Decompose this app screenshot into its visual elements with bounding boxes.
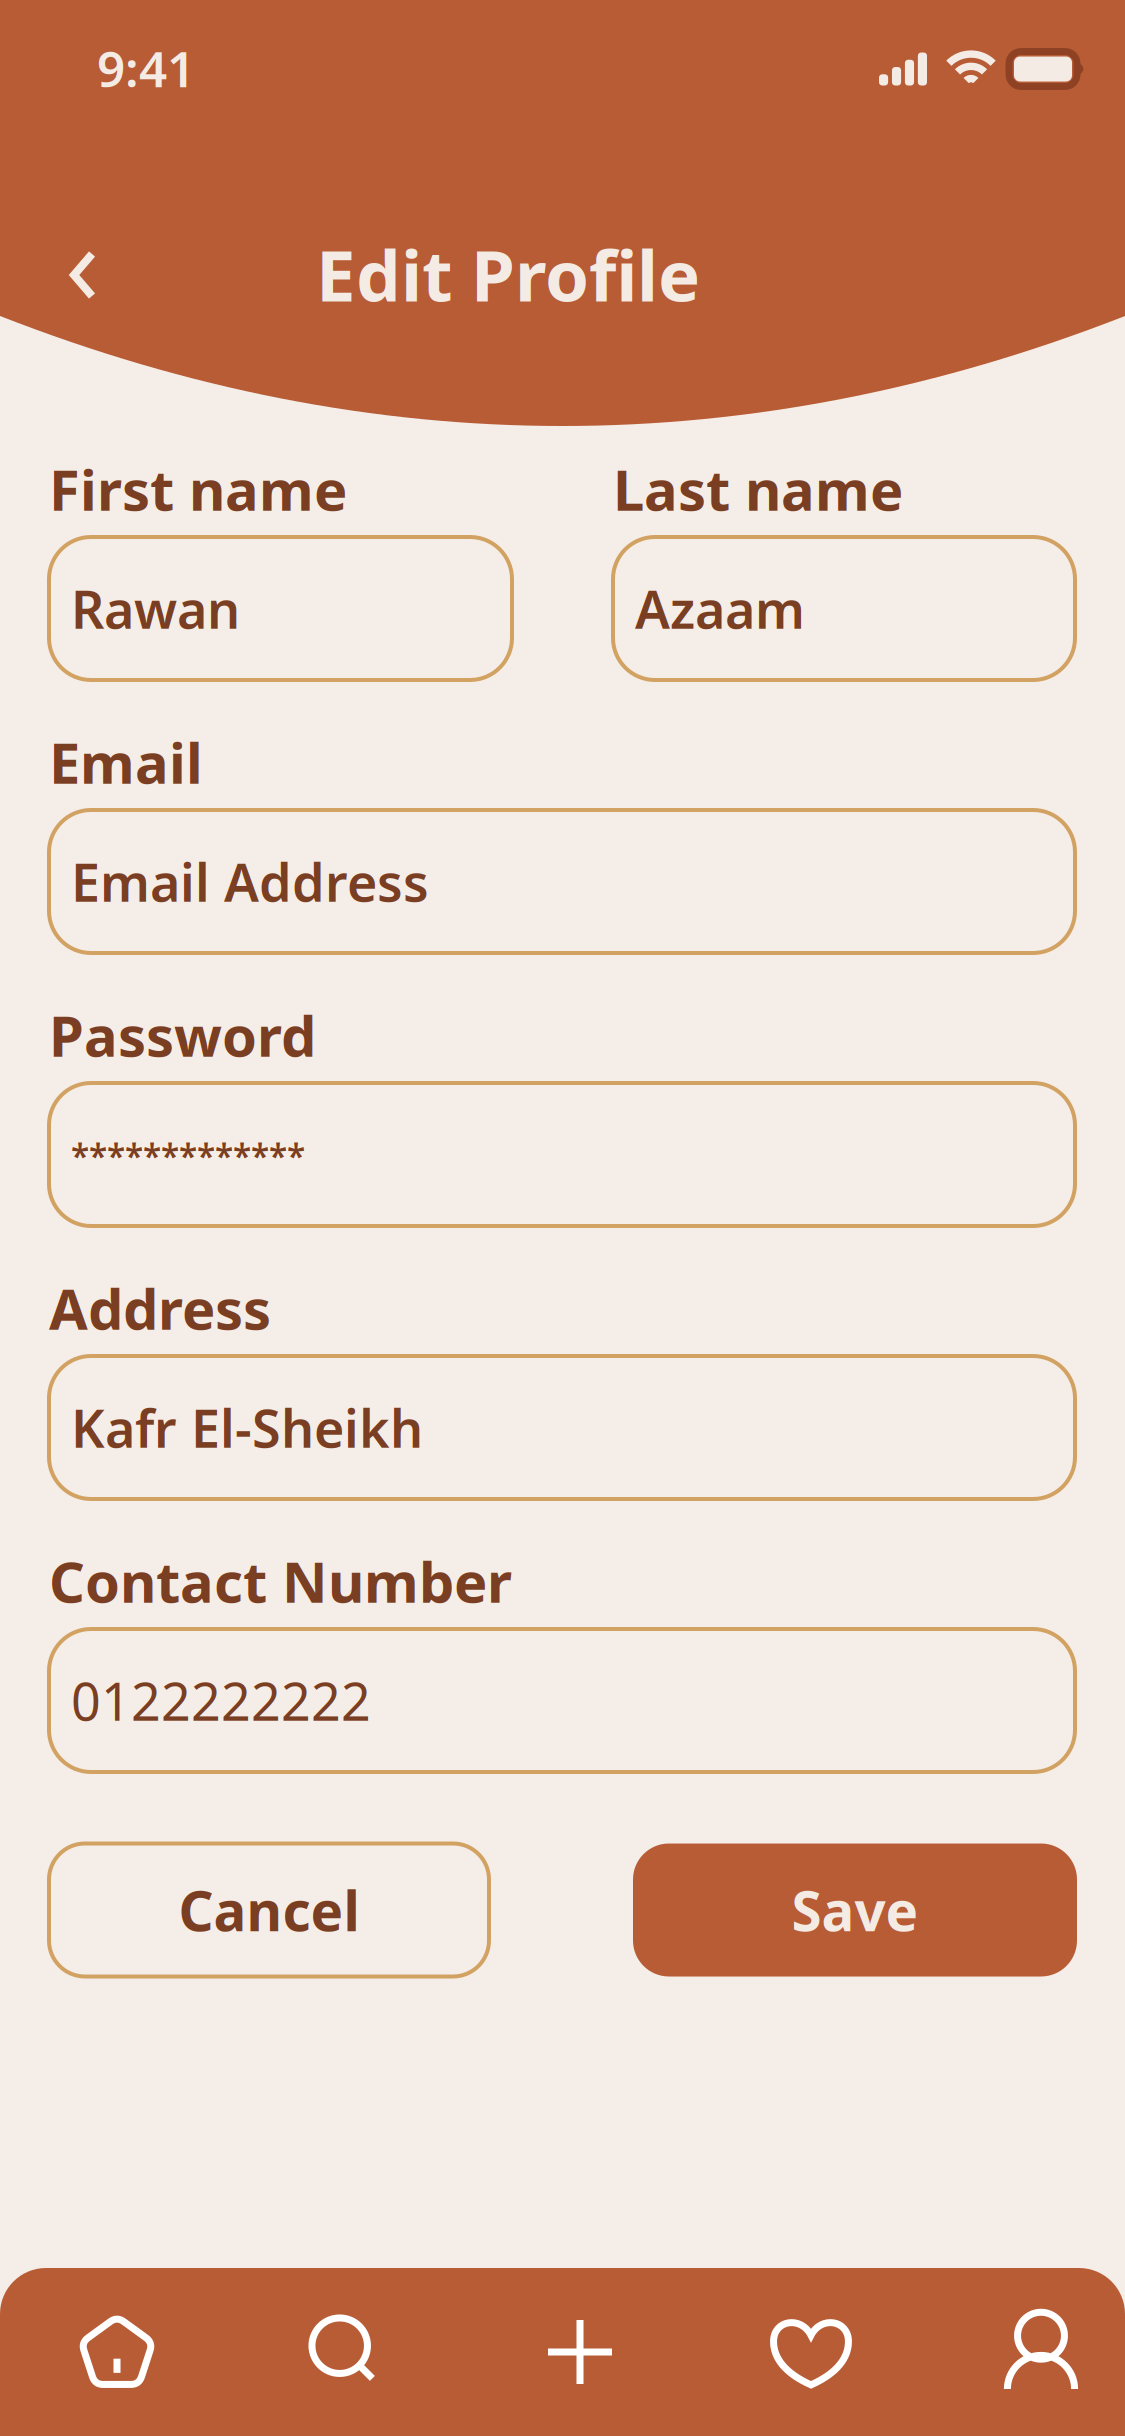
button[interactable]: Azaam bbox=[613, 537, 1075, 680]
staticText: Save bbox=[791, 1874, 918, 1946]
staticText: First name bbox=[49, 452, 347, 526]
staticText: Cancel bbox=[178, 1874, 359, 1946]
button[interactable]: Cancel bbox=[49, 1843, 489, 1976]
staticText: Email Address bbox=[71, 847, 429, 916]
staticText: Password bbox=[49, 998, 316, 1072]
button[interactable]: Home bbox=[27, 2268, 207, 2436]
staticText: 9:41 bbox=[97, 35, 195, 101]
button[interactable]: Email Address bbox=[49, 810, 1075, 953]
staticText: Email bbox=[49, 725, 203, 799]
button[interactable]: Kafr El-Sheikh bbox=[49, 1356, 1075, 1499]
button[interactable]: Favorites bbox=[721, 2268, 901, 2436]
staticText: ************* bbox=[71, 1133, 305, 1178]
button[interactable]: Search bbox=[256, 2268, 436, 2436]
button[interactable]: 0122222222 bbox=[49, 1629, 1075, 1772]
staticText: Address bbox=[49, 1271, 271, 1345]
staticText: Last name bbox=[613, 452, 903, 526]
staticText: Contact Number bbox=[49, 1544, 512, 1618]
button[interactable]: Rawan bbox=[49, 537, 512, 680]
button[interactable]: Back bbox=[28, 220, 138, 330]
button[interactable]: Save bbox=[633, 1843, 1077, 1976]
staticText: Azaam bbox=[635, 574, 805, 643]
staticText: Kafr El-Sheikh bbox=[71, 1393, 423, 1462]
button[interactable]: ************* bbox=[49, 1083, 1075, 1226]
staticText: Edit Profile bbox=[316, 227, 700, 321]
staticText: Rawan bbox=[71, 574, 240, 643]
button[interactable]: Profile bbox=[951, 2268, 1125, 2436]
staticText: 0122222222 bbox=[71, 1666, 371, 1735]
button[interactable]: Add bbox=[490, 2268, 670, 2436]
